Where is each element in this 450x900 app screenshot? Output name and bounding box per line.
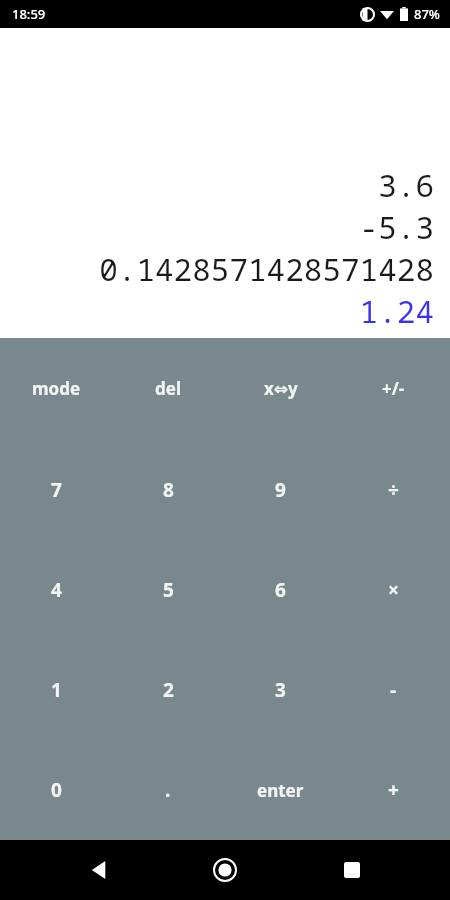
staticText: +/-: [382, 377, 405, 400]
button[interactable]: +: [337, 740, 450, 840]
button[interactable]: +/-: [337, 338, 450, 439]
button[interactable]: ×: [337, 540, 450, 640]
button[interactable]: 7: [0, 439, 112, 540]
button[interactable]: 3: [224, 640, 337, 740]
staticText: ×: [388, 577, 399, 603]
button[interactable]: Home: [197, 842, 253, 898]
staticText: 18:59: [12, 5, 46, 23]
button[interactable]: 6: [224, 540, 337, 640]
button[interactable]: Recent apps: [324, 842, 380, 898]
staticText: 0: [51, 777, 62, 803]
staticText: 87%: [414, 5, 440, 23]
staticText: 2: [163, 677, 174, 703]
button[interactable]: 0: [0, 740, 112, 840]
staticText: 0.1428571428571428: [99, 248, 434, 290]
button[interactable]: -: [337, 640, 450, 740]
staticText: 4: [51, 577, 62, 603]
staticText: x⇔y: [264, 377, 298, 400]
staticText: 1: [51, 677, 62, 703]
button[interactable]: .: [112, 740, 224, 840]
button[interactable]: 2: [112, 640, 224, 740]
button[interactable]: del: [112, 338, 224, 439]
button[interactable]: ÷: [337, 439, 450, 540]
staticText: 5: [163, 577, 174, 603]
staticText: ÷: [388, 477, 399, 503]
button[interactable]: Back: [71, 842, 127, 898]
staticText: 3: [275, 677, 286, 703]
button[interactable]: mode: [0, 338, 112, 439]
staticText: 9: [275, 477, 286, 503]
staticText: enter: [257, 779, 304, 802]
button[interactable]: 5: [112, 540, 224, 640]
button[interactable]: 8: [112, 439, 224, 540]
button[interactable]: enter: [224, 740, 337, 840]
staticText: -5.3: [359, 206, 434, 248]
button[interactable]: x⇔y: [224, 338, 337, 439]
staticText: -: [390, 677, 397, 703]
staticText: +: [388, 777, 399, 803]
button[interactable]: 1: [0, 640, 112, 740]
staticText: 3.6: [378, 164, 434, 206]
staticText: mode: [32, 377, 81, 400]
staticText: del: [155, 377, 181, 400]
staticText: .: [165, 777, 171, 803]
staticText: 7: [51, 477, 62, 503]
staticText: 1.24: [359, 290, 434, 332]
staticText: 6: [275, 577, 286, 603]
button[interactable]: 9: [224, 439, 337, 540]
staticText: 8: [163, 477, 174, 503]
button[interactable]: 4: [0, 540, 112, 640]
